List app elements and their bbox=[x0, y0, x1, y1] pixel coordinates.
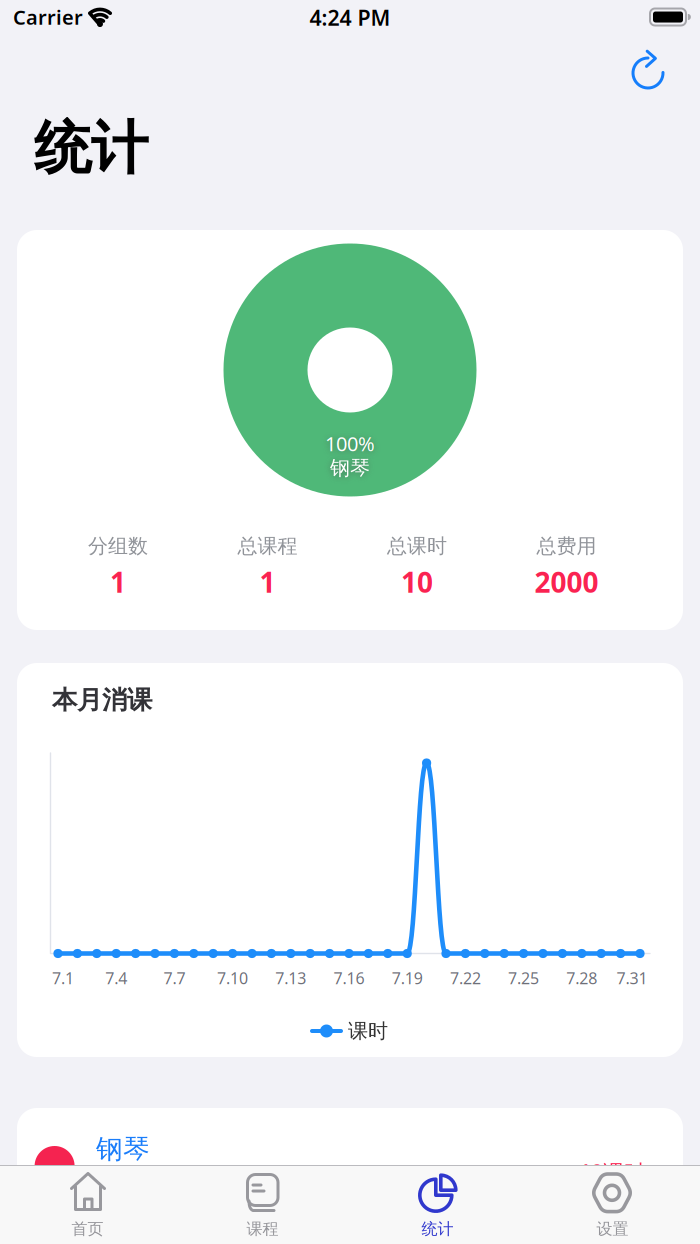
staticText: 2000 bbox=[534, 563, 598, 601]
staticText: 总课时 bbox=[387, 534, 447, 558]
button[interactable]: 课程 bbox=[175, 1165, 350, 1244]
staticText: 1 bbox=[259, 563, 275, 601]
staticText: 首页 bbox=[71, 1219, 103, 1239]
staticText: 总课程 bbox=[237, 534, 297, 558]
staticText: 钢琴 bbox=[96, 1133, 150, 1165]
staticText: 7.13 bbox=[275, 967, 306, 989]
staticText: 统计 bbox=[421, 1219, 453, 1239]
staticText: 分组数 bbox=[88, 534, 148, 558]
staticText: 1 bbox=[110, 563, 126, 601]
staticText: 10课时 bbox=[579, 1158, 645, 1186]
staticText: 钢琴 bbox=[330, 456, 370, 480]
staticText: Carrier bbox=[13, 4, 83, 30]
staticText: 7.31 bbox=[616, 967, 647, 989]
staticText: 统计 bbox=[34, 113, 148, 184]
staticText: 总费用 bbox=[536, 534, 596, 558]
button[interactable]: 设置 bbox=[525, 1165, 700, 1244]
staticText: 10 bbox=[401, 563, 433, 601]
staticText: 4:24 PM bbox=[309, 3, 390, 31]
staticText: 课程 bbox=[246, 1219, 278, 1239]
staticText: 本月消课 bbox=[52, 684, 152, 715]
staticText: 100% bbox=[325, 430, 375, 457]
staticText: 7.25 bbox=[508, 967, 539, 989]
button[interactable]: 首页 bbox=[0, 1165, 175, 1244]
staticText: 7.22 bbox=[450, 967, 481, 989]
staticText: 7.10 bbox=[217, 967, 248, 989]
staticText: 7.7 bbox=[163, 967, 185, 989]
staticText: 课时 bbox=[348, 1019, 388, 1043]
button[interactable]: Refresh bbox=[626, 48, 670, 92]
staticText: 7.4 bbox=[105, 967, 127, 989]
staticText: 设置 bbox=[596, 1219, 628, 1239]
button[interactable]: 钢琴 bbox=[17, 1108, 683, 1228]
staticText: 7.19 bbox=[392, 967, 423, 989]
staticText: 7.1 bbox=[52, 967, 74, 989]
staticText: 7.28 bbox=[566, 967, 597, 989]
button[interactable]: 统计 bbox=[350, 1165, 525, 1244]
staticText: 7.16 bbox=[333, 967, 364, 989]
